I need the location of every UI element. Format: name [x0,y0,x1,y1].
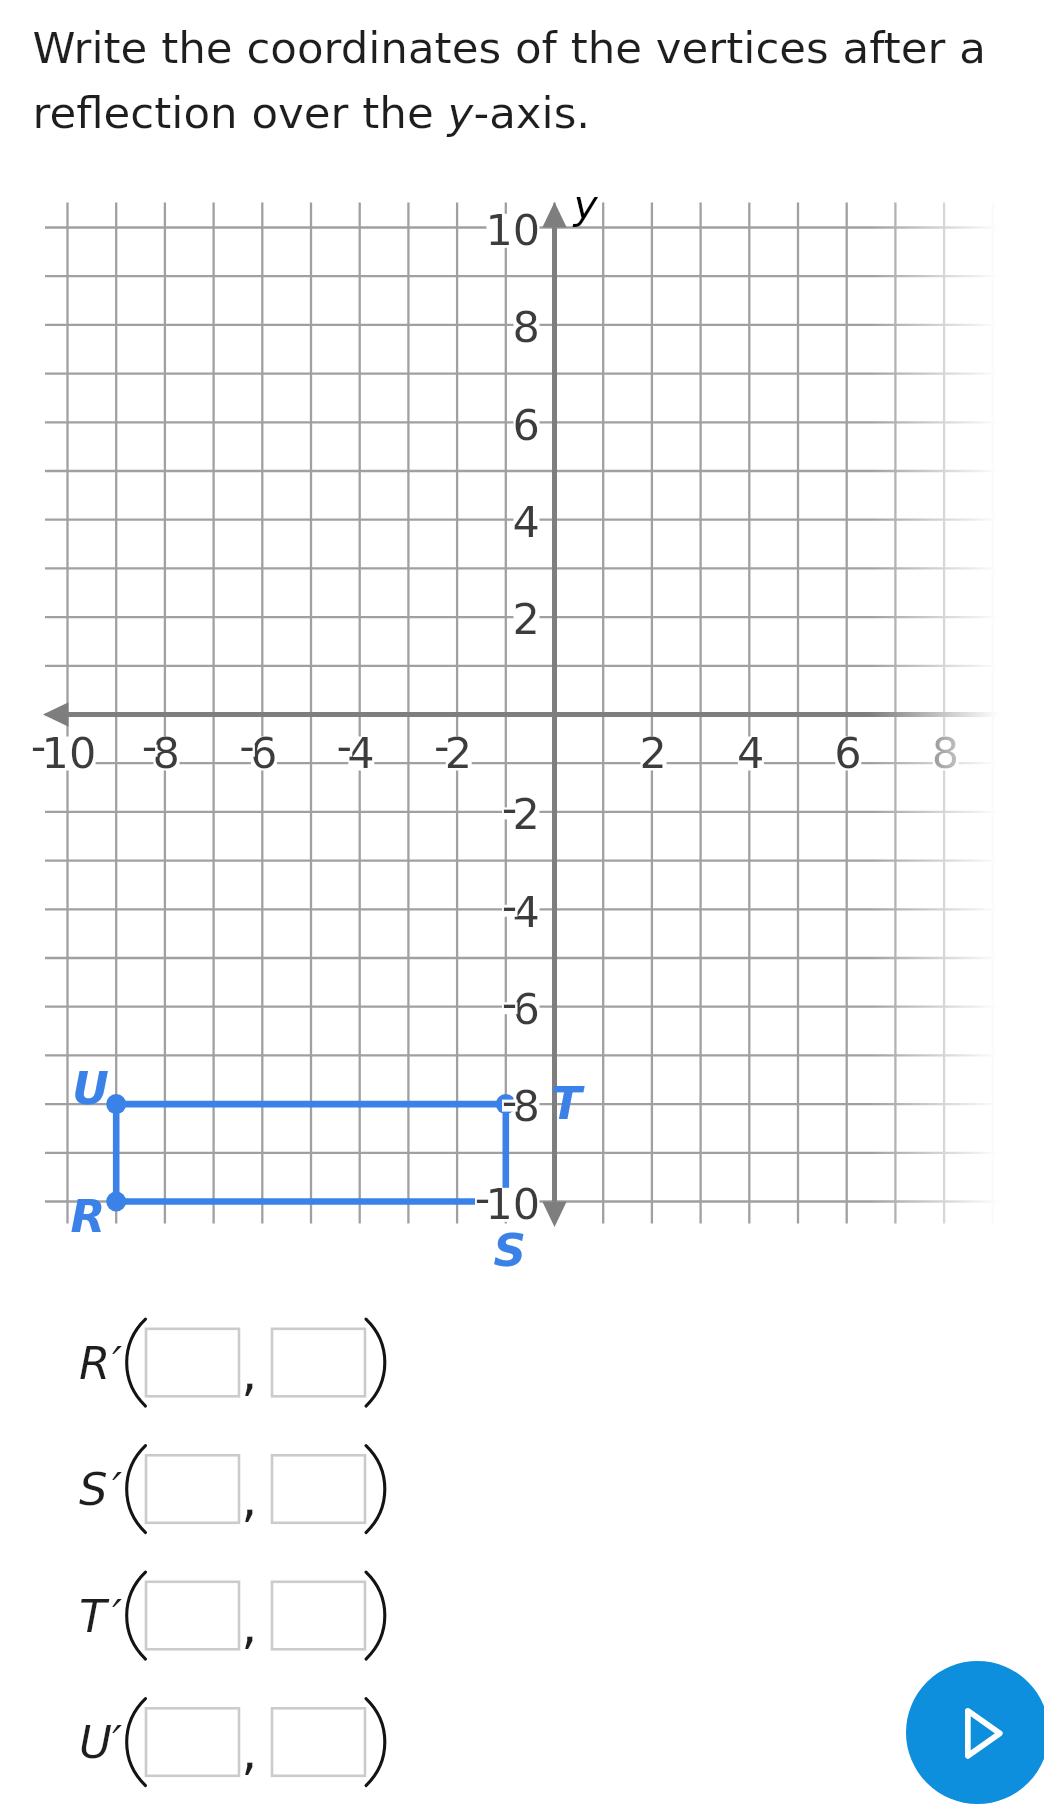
button[interactable]: Play [906,1661,1044,1804]
